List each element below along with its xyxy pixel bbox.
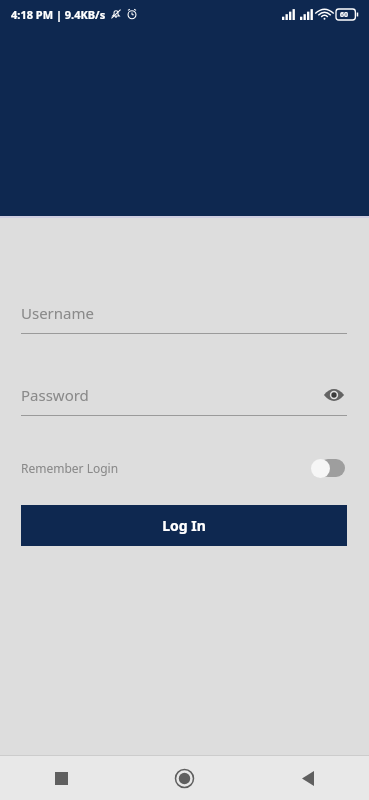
button[interactable]: Remember Login toggle bbox=[311, 458, 347, 478]
staticText: 4:18 PM | 9.4KB/s bbox=[11, 7, 106, 22]
staticText: Username bbox=[21, 303, 94, 323]
button[interactable]: Show password bbox=[321, 382, 347, 408]
button[interactable]: Recent apps bbox=[0, 756, 123, 800]
staticText: Remember Login bbox=[21, 460, 119, 476]
staticText: Log In bbox=[162, 516, 206, 535]
button[interactable]: Log In bbox=[21, 505, 347, 546]
button[interactable]: Back bbox=[246, 756, 369, 800]
button[interactable]: Password bbox=[21, 382, 347, 416]
staticText: Password bbox=[21, 385, 89, 405]
staticText: 60 bbox=[340, 10, 349, 20]
button[interactable]: Home bbox=[123, 756, 246, 800]
button[interactable]: Username bbox=[21, 300, 347, 334]
